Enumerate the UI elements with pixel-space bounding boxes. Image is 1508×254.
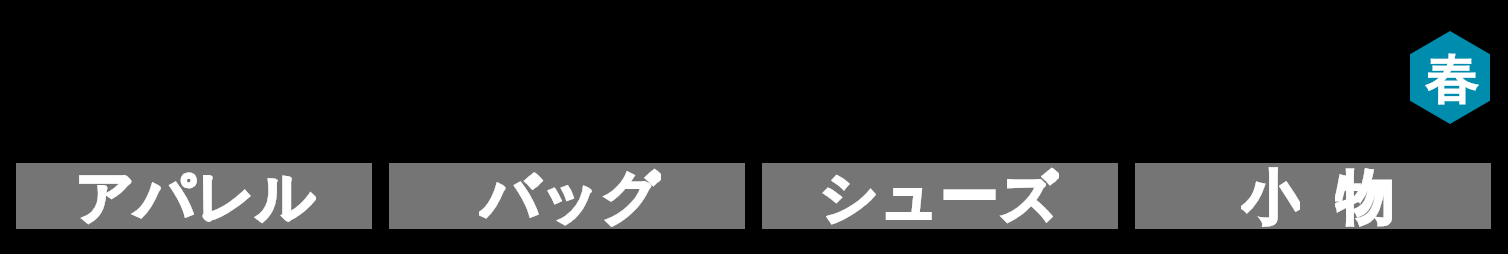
staticText: 物 bbox=[1335, 162, 1394, 228]
staticText: 春 bbox=[1425, 47, 1478, 114]
button[interactable]: バッグ bbox=[389, 163, 745, 229]
staticText: アパレル bbox=[74, 162, 316, 228]
button[interactable]: アパレル bbox=[16, 163, 372, 229]
staticText: バッグ bbox=[479, 162, 661, 228]
staticText: シューズ bbox=[818, 162, 1059, 228]
staticText: 小 bbox=[1241, 162, 1300, 228]
button[interactable]: 春 spring season bbox=[1410, 31, 1490, 124]
button[interactable]: 小 bbox=[1135, 163, 1491, 229]
button[interactable]: シューズ bbox=[762, 163, 1118, 229]
